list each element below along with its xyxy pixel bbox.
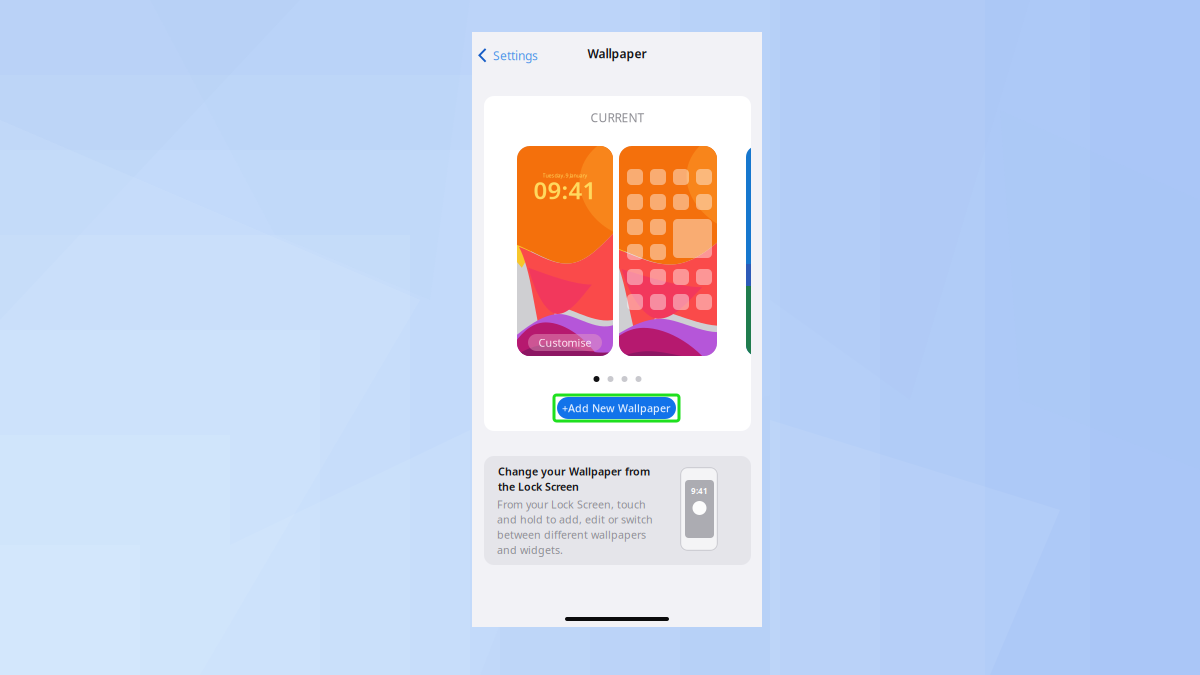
staticText: Tuesday, 9 January (542, 172, 587, 179)
staticText: Wallpaper (587, 45, 646, 61)
button[interactable]: Customise (528, 334, 602, 351)
staticText: From your Lock Screen, touch and hold to… (497, 497, 653, 557)
staticText: CURRENT (590, 109, 644, 125)
staticText: +Add New Wallpaper (562, 401, 671, 415)
staticText: Settings (493, 47, 538, 63)
button[interactable]: Settings (474, 40, 550, 70)
staticText: Change your Wallpaper from the Lock Scre… (498, 464, 650, 494)
staticText: 9:41 (691, 486, 708, 496)
staticText: Customise (538, 335, 591, 350)
staticText: 09:41 (533, 174, 596, 206)
button[interactable]: +Add New Wallpaper (554, 395, 679, 421)
